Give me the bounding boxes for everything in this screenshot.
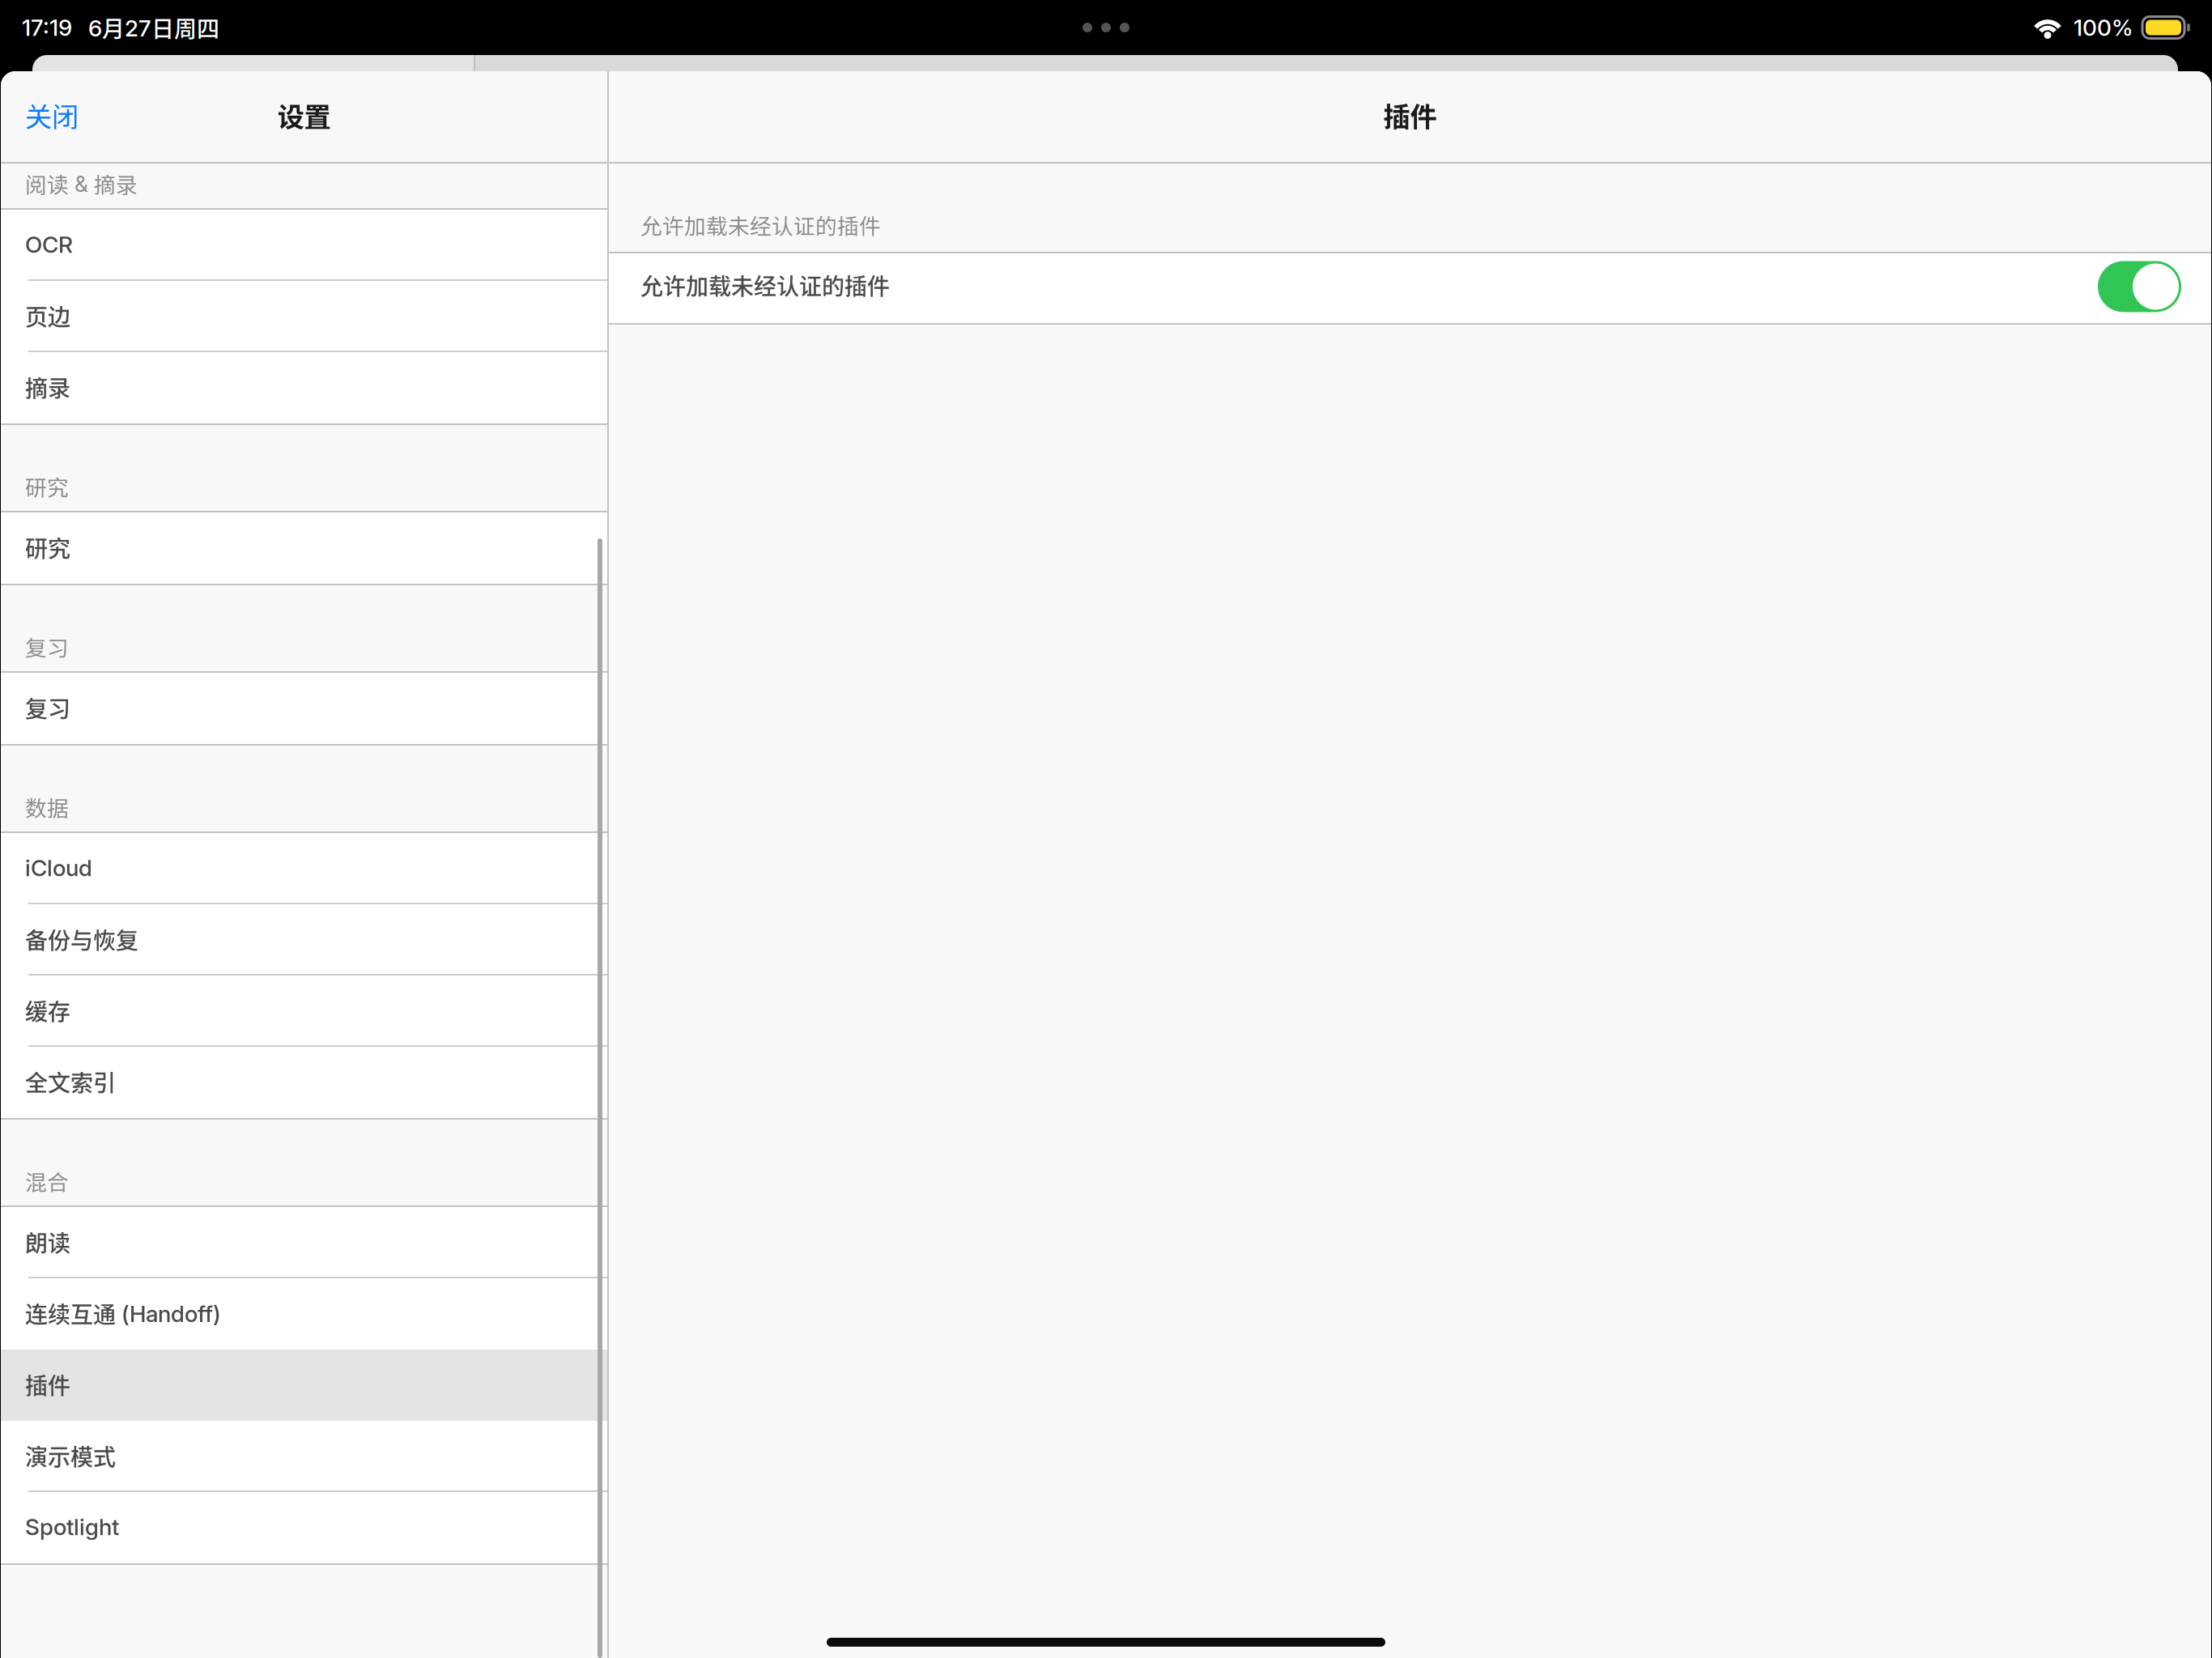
staticText: 缓存: [25, 994, 70, 1027]
button[interactable]: Spotlight: [1, 1492, 607, 1563]
staticText: 页边: [25, 299, 70, 332]
staticText: 6月27日周四: [88, 11, 219, 44]
staticText: 摘录: [25, 371, 70, 403]
staticText: 允许加载未经认证的插件: [640, 269, 890, 301]
button[interactable]: 复习: [1, 673, 607, 744]
button[interactable]: iCloud: [1, 833, 607, 904]
button[interactable]: 备份与恢复: [1, 904, 607, 976]
button[interactable]: 关闭: [1, 71, 100, 162]
staticText: 阅读 & 摘录: [25, 168, 138, 199]
button[interactable]: 摘录: [1, 352, 607, 423]
staticText: 插件: [1383, 95, 1437, 135]
button[interactable]: 插件: [1, 1350, 607, 1421]
staticText: 朗读: [25, 1225, 70, 1258]
button[interactable]: 朗读: [1, 1207, 607, 1278]
button[interactable]: 页边: [1, 281, 607, 352]
staticText: 全文索引: [25, 1065, 116, 1098]
button[interactable]: 研究: [1, 512, 607, 584]
button[interactable]: 全文索引: [1, 1047, 607, 1118]
staticText: iCloud: [25, 854, 92, 882]
button[interactable]: 允许加载未经认证的插件: [609, 253, 2211, 323]
staticText: 设置: [277, 95, 331, 135]
button[interactable]: 缓存: [1, 976, 607, 1047]
staticText: 17:19: [22, 14, 72, 41]
staticText: 数据: [25, 791, 69, 822]
staticText: 关闭: [25, 95, 79, 135]
staticText: 演示模式: [25, 1439, 116, 1472]
staticText: 插件: [25, 1368, 70, 1401]
staticText: 研究: [25, 531, 70, 564]
button[interactable]: 连续互通 (Handoff): [1, 1278, 607, 1350]
staticText: 研究: [25, 471, 69, 502]
staticText: 100%: [2074, 14, 2133, 41]
staticText: 复习: [25, 631, 69, 662]
staticText: Spotlight: [25, 1513, 119, 1541]
button[interactable]: 演示模式: [1, 1421, 607, 1492]
staticText: 允许加载未经认证的插件: [640, 209, 881, 240]
staticText: 复习: [25, 691, 70, 724]
button[interactable]: 允许加载未经认证的插件，已开启: [2098, 261, 2181, 312]
staticText: 备份与恢复: [25, 923, 138, 955]
staticText: 混合: [25, 1165, 69, 1196]
staticText: 连续互通 (Handoff): [25, 1297, 221, 1329]
staticText: OCR: [25, 231, 73, 258]
button[interactable]: OCR: [1, 210, 607, 281]
